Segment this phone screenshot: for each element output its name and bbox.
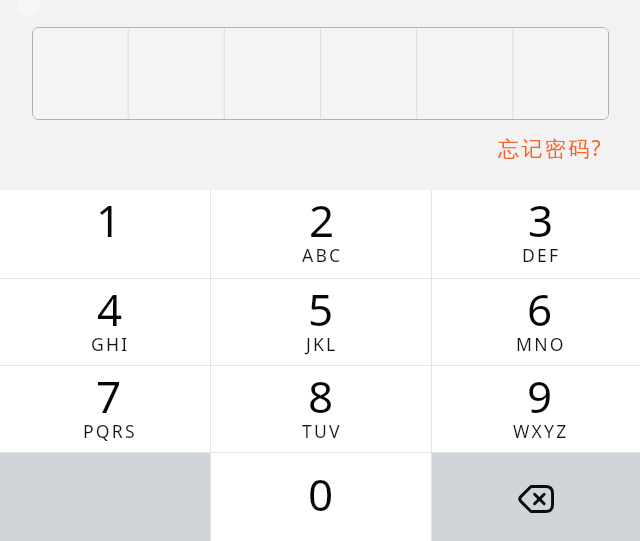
button[interactable]: 5 — [211, 279, 431, 365]
button[interactable]: 8 — [211, 366, 431, 452]
staticText: 8 — [308, 366, 334, 426]
staticText: DEF — [522, 243, 561, 267]
button[interactable]: 4 — [0, 279, 210, 365]
staticText: 0 — [308, 464, 334, 524]
staticText: 4 — [97, 279, 123, 339]
button[interactable]: 6 — [432, 279, 640, 365]
button[interactable]: Password input — [32, 27, 609, 120]
staticText: 2 — [309, 190, 335, 250]
staticText: GHI — [91, 332, 130, 356]
button[interactable]: 9 — [432, 366, 640, 452]
staticText: 9 — [527, 366, 553, 426]
staticText: TUV — [302, 419, 342, 443]
staticText: 7 — [96, 366, 122, 426]
staticText: JKL — [306, 332, 338, 356]
button[interactable]: 3 — [432, 190, 640, 278]
button[interactable]: 忘记密码? — [488, 128, 614, 169]
button[interactable]: 0 — [211, 453, 431, 541]
staticText: 5 — [308, 279, 334, 339]
staticText: MNO — [516, 332, 566, 356]
button[interactable]: 2 — [211, 190, 431, 278]
staticText: 6 — [527, 279, 553, 339]
staticText: 1 — [96, 190, 122, 250]
staticText: ABC — [302, 243, 343, 267]
staticText: WXYZ — [513, 419, 569, 443]
button[interactable]: Backspace — [432, 453, 640, 541]
button[interactable]: 1 — [0, 190, 210, 278]
staticText: PQRS — [83, 419, 137, 443]
staticText: 3 — [528, 190, 554, 250]
button[interactable]: 7 — [0, 366, 210, 452]
staticText: 忘记密码? — [498, 134, 604, 163]
